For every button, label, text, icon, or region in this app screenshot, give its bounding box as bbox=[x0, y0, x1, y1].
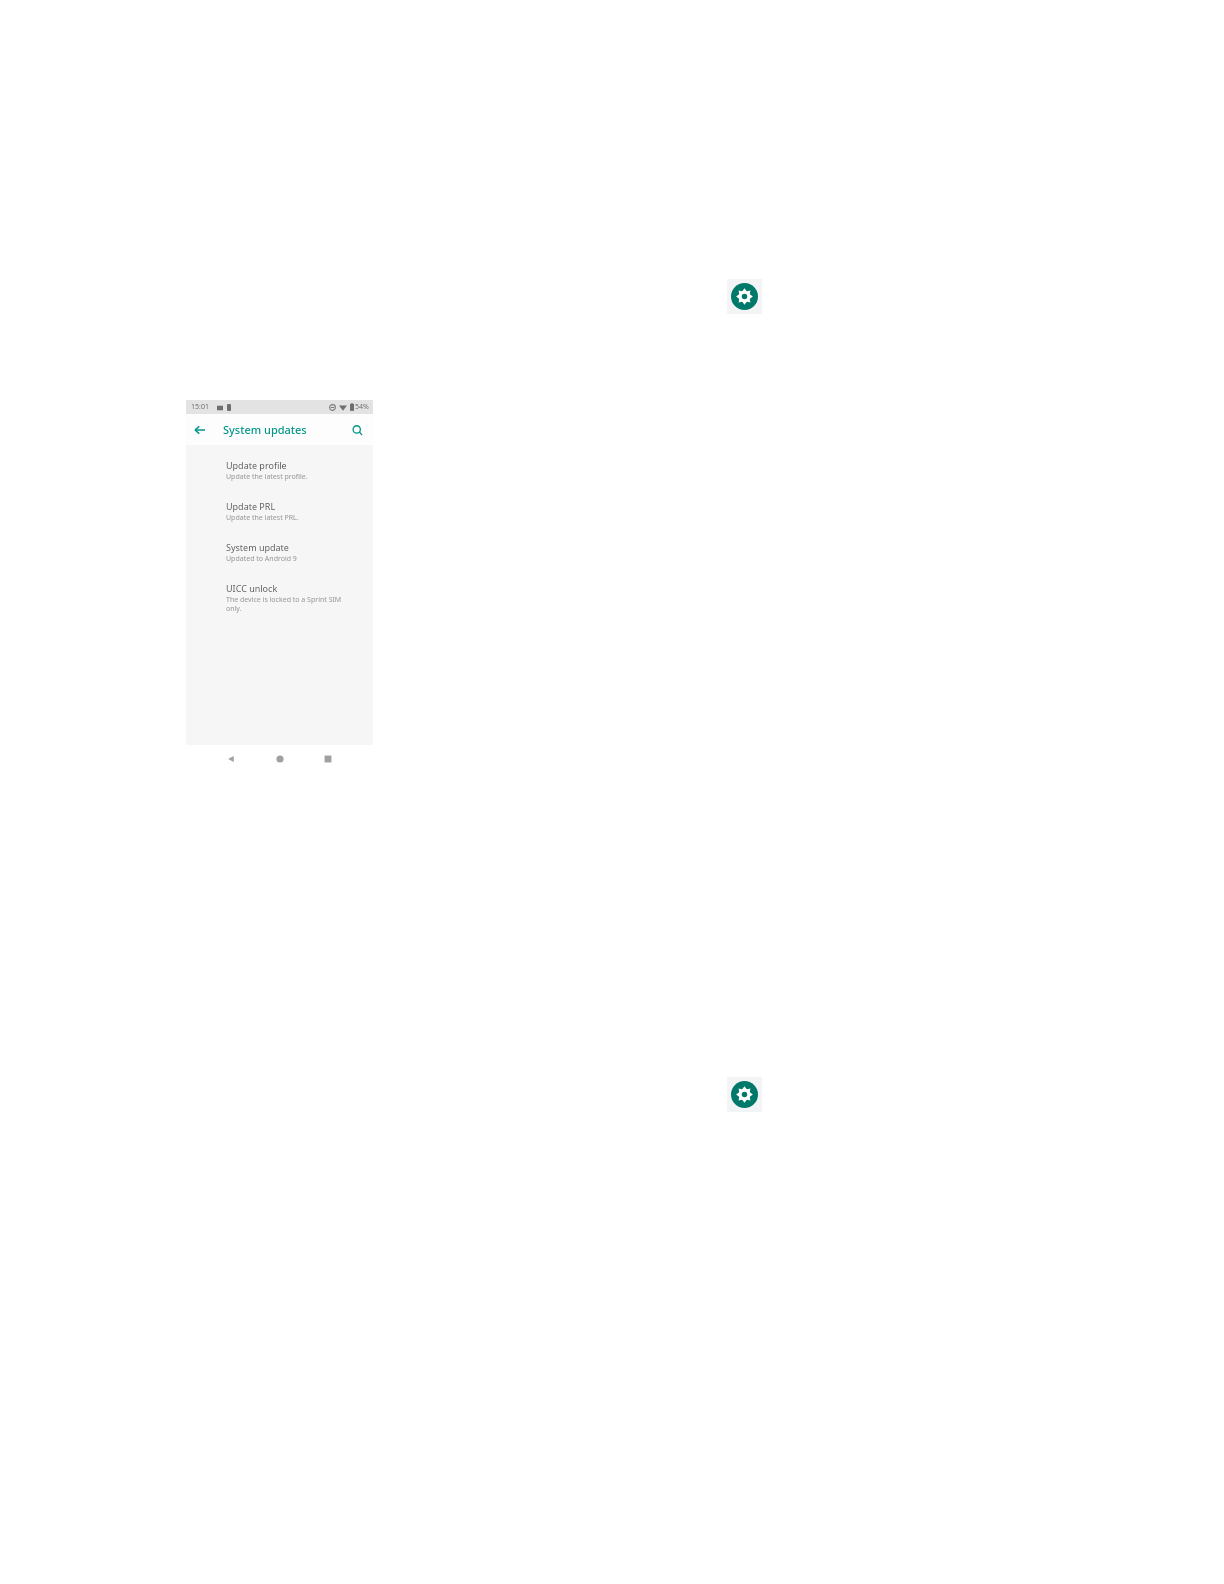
button[interactable]: Home bbox=[269, 748, 291, 770]
staticText: UICC unlock bbox=[226, 582, 278, 594]
staticText: System update bbox=[226, 541, 289, 553]
staticText: 15:01 bbox=[191, 402, 209, 412]
staticText: Update profile bbox=[226, 459, 287, 471]
button[interactable]: Update PRL bbox=[186, 499, 373, 524]
button[interactable]: Back bbox=[220, 748, 242, 770]
staticText: System updates bbox=[223, 422, 307, 437]
staticText: The device is locked to a Sprint SIM onl… bbox=[226, 595, 357, 613]
button[interactable]: Settings bbox=[727, 279, 762, 314]
button[interactable]: Update profile bbox=[186, 458, 373, 483]
staticText: Update the latest PRL. bbox=[226, 513, 299, 523]
button[interactable]: Settings bbox=[727, 1077, 762, 1112]
button[interactable]: System update bbox=[186, 540, 373, 565]
staticText: Update PRL bbox=[226, 500, 276, 512]
staticText: Update the latest profile. bbox=[226, 472, 308, 482]
button[interactable]: UICC unlock bbox=[186, 581, 373, 614]
staticText: Updated to Android 9 bbox=[226, 554, 297, 564]
staticText: 54% bbox=[355, 402, 369, 412]
button[interactable]: Recents bbox=[317, 748, 339, 770]
button[interactable]: Search bbox=[343, 416, 371, 444]
button[interactable]: Back bbox=[186, 416, 214, 444]
